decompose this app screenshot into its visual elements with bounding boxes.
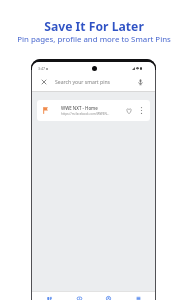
button[interactable]: Feed (36, 292, 62, 300)
other: Close (42, 80, 46, 84)
staticText: 3:47 (38, 66, 46, 71)
staticText: https://m.facebook.com/WWEN... (61, 112, 110, 116)
other: Voice search (138, 79, 143, 85)
other: Save (126, 108, 132, 114)
button[interactable]: Close (32, 73, 155, 91)
button[interactable]: Profile (95, 292, 121, 300)
staticText: Pin pages, profile and more to Smart Pin… (17, 34, 171, 45)
button[interactable]: WWE NXT - Home (37, 100, 150, 121)
other: More options (141, 107, 142, 114)
staticText: Search your smart pins (55, 79, 111, 86)
staticText: WWE NXT - Home (61, 105, 98, 111)
button[interactable]: Menu (125, 292, 151, 300)
button[interactable]: Watch (66, 292, 92, 300)
staticText: Save It For Later (44, 18, 144, 35)
